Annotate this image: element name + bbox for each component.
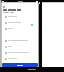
button[interactable] [2, 5, 6, 9]
button[interactable] [2, 44, 38, 50]
button[interactable] [2, 63, 38, 67]
button[interactable] [2, 14, 38, 20]
button[interactable] [2, 38, 38, 44]
button[interactable] [2, 20, 38, 26]
button[interactable] [2, 56, 38, 62]
button[interactable] [2, 26, 38, 32]
button[interactable] [2, 50, 38, 56]
